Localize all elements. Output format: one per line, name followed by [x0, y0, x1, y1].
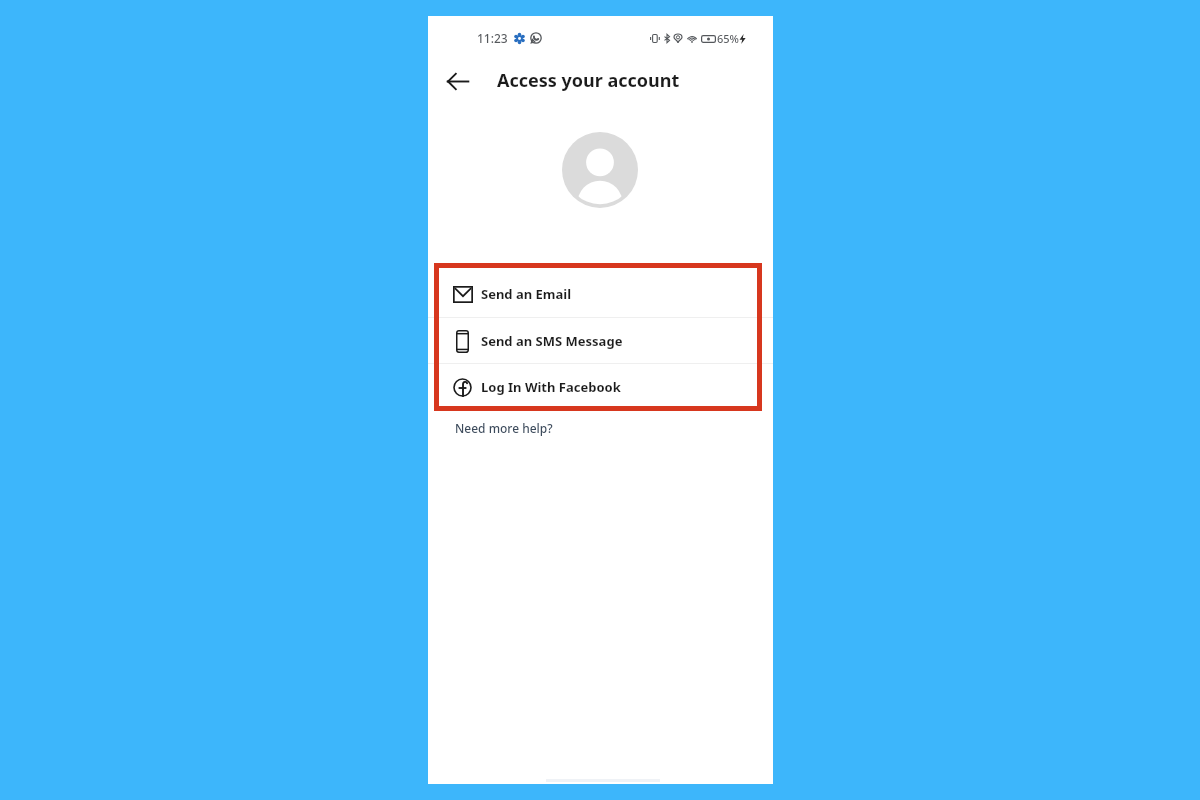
staticText: Need more help? — [455, 420, 553, 436]
button[interactable]: Send an Email — [428, 271, 773, 317]
staticText: Send an Email — [481, 285, 572, 303]
button[interactable]: Log In With Facebook — [428, 364, 773, 409]
staticText: 65% — [717, 31, 739, 46]
button[interactable]: Need more help? — [448, 414, 560, 442]
staticText: Access your account — [497, 68, 680, 93]
staticText: Send an SMS Message — [481, 332, 623, 350]
staticText: 11:23 — [477, 30, 508, 46]
button[interactable]: Send an SMS Message — [428, 318, 773, 363]
button[interactable]: Back — [440, 63, 476, 99]
staticText: Log In With Facebook — [481, 378, 621, 396]
